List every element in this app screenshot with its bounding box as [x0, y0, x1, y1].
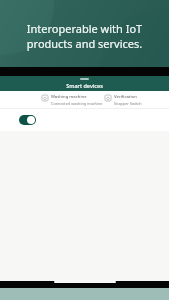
- staticText: Washing machine: [51, 94, 87, 100]
- staticText: Connected washing machine: [51, 101, 103, 106]
- button[interactable]: Verification: [105, 91, 169, 106]
- staticText: Smart devices: [0, 82, 169, 89]
- staticText: Snapper Switch: [114, 101, 142, 106]
- button[interactable]: Washing machine: [42, 91, 105, 106]
- button[interactable]: Toggle washing machine: [19, 115, 36, 125]
- staticText: Interoperable with IoT products and serv…: [8, 21, 161, 51]
- staticText: Verification: [114, 94, 137, 100]
